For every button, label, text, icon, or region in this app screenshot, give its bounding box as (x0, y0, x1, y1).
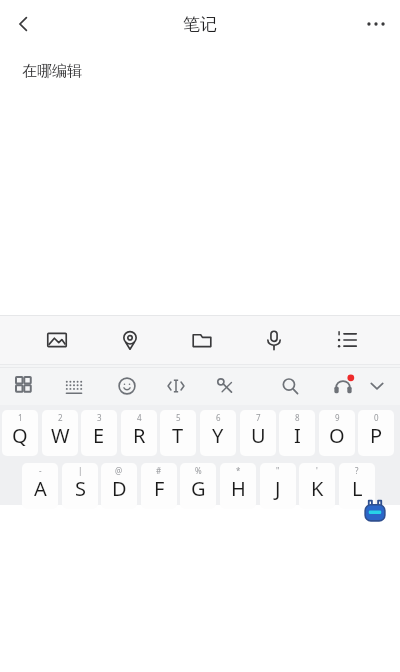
staticText: 7 (256, 412, 261, 423)
staticText: I (294, 422, 301, 449)
button[interactable]: 1 (2, 410, 38, 456)
staticText: 4 (137, 412, 142, 423)
staticText: 笔记 (183, 14, 217, 35)
staticText: ? (355, 465, 359, 476)
staticText: # (156, 465, 162, 476)
staticText: 3 (97, 412, 102, 423)
staticText: 9 (335, 412, 340, 423)
button[interactable]: Keyboard (57, 369, 91, 403)
staticText: U (251, 422, 266, 449)
staticText: | (78, 465, 83, 476)
button[interactable]: More options (352, 0, 400, 48)
button[interactable]: Assistant (362, 498, 388, 524)
staticText: 1 (18, 412, 23, 423)
staticText: L (352, 475, 363, 502)
button[interactable]: " (260, 463, 296, 509)
button[interactable]: Emoji (110, 369, 144, 403)
button[interactable]: 0 (358, 410, 394, 456)
button[interactable]: ' (299, 463, 335, 509)
staticText: G (191, 475, 206, 502)
staticText: T (172, 422, 184, 449)
button[interactable]: 8 (279, 410, 315, 456)
button[interactable]: # (141, 463, 177, 509)
staticText: Q (12, 422, 28, 449)
staticText: 2 (58, 412, 63, 423)
button[interactable]: * (220, 463, 256, 509)
button[interactable]: 9 (319, 410, 355, 456)
staticText: " (276, 465, 280, 476)
staticText: H (231, 475, 246, 502)
button[interactable]: | (62, 463, 98, 509)
button[interactable]: Insert file (178, 316, 226, 364)
button[interactable]: - (22, 463, 58, 509)
button[interactable]: Clipboard (208, 369, 242, 403)
staticText: Y (212, 422, 224, 449)
button[interactable]: % (180, 463, 216, 509)
button[interactable]: 6 (200, 410, 236, 456)
staticText: P (370, 422, 383, 449)
staticText: J (275, 475, 281, 502)
button[interactable]: Voice assistant (326, 369, 360, 403)
staticText: D (112, 475, 127, 502)
staticText: 6 (216, 412, 221, 423)
staticText: - (39, 465, 42, 476)
staticText: F (154, 475, 165, 502)
staticText: 8 (295, 412, 300, 423)
staticText: O (329, 422, 345, 449)
button[interactable]: 3 (81, 410, 117, 456)
staticText: ' (316, 465, 318, 476)
button[interactable]: Insert location (106, 316, 154, 364)
staticText: @ (115, 465, 123, 476)
staticText: 5 (176, 412, 181, 423)
button[interactable]: Insert image (33, 316, 81, 364)
button[interactable]: Voice input (250, 316, 298, 364)
button[interactable]: ? (339, 463, 375, 509)
button[interactable]: Back (0, 0, 48, 48)
button[interactable]: 2 (42, 410, 78, 456)
button[interactable]: 5 (160, 410, 196, 456)
staticText: W (51, 422, 70, 449)
staticText: % (195, 465, 202, 476)
button[interactable]: Cursor control (159, 369, 193, 403)
button[interactable]: @ (101, 463, 137, 509)
button[interactable]: 7 (240, 410, 276, 456)
button[interactable]: Panels (8, 369, 42, 403)
button[interactable]: Search (273, 369, 307, 403)
staticText: * (236, 465, 241, 476)
staticText: S (75, 475, 86, 502)
staticText: E (93, 422, 105, 449)
staticText: R (133, 422, 146, 449)
staticText: K (311, 475, 324, 502)
staticText: 在哪编辑 (22, 62, 82, 81)
staticText: A (34, 475, 47, 502)
button[interactable]: 4 (121, 410, 157, 456)
button[interactable]: Hide keyboard (360, 369, 394, 403)
button[interactable]: Checklist (323, 316, 371, 364)
staticText: 0 (374, 412, 379, 423)
